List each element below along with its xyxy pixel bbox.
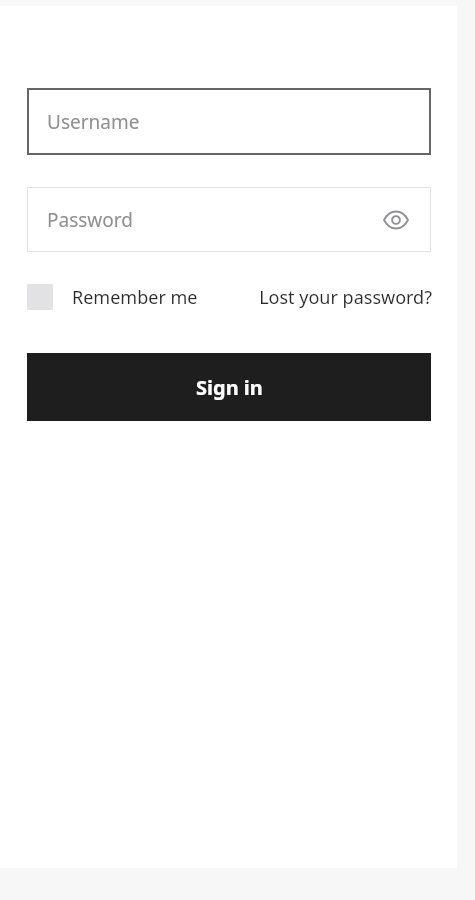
- button[interactable]: Lost your password?: [259, 285, 432, 310]
- button[interactable]: Password: [27, 187, 431, 252]
- button[interactable]: Sign in: [27, 353, 431, 421]
- staticText: Username: [47, 109, 140, 135]
- staticText: Remember me: [72, 285, 198, 310]
- staticText: Sign in: [196, 374, 263, 401]
- button[interactable]: Username: [27, 88, 431, 155]
- button[interactable]: Remember me: [27, 284, 198, 310]
- staticText: Lost your password?: [259, 285, 432, 310]
- button[interactable]: Show password: [381, 205, 411, 235]
- staticText: Password: [47, 207, 133, 233]
